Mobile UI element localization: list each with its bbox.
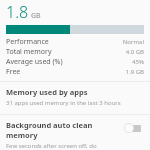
button[interactable]: Performance — [0, 37, 150, 47]
staticText: 45% — [132, 58, 144, 66]
staticText: 4.0 GB — [125, 48, 144, 56]
button[interactable]: Total memory — [0, 47, 150, 57]
button[interactable]: Free — [0, 67, 150, 77]
staticText: GB — [31, 11, 41, 21]
staticText: Background auto clean memory — [6, 120, 121, 140]
button[interactable]: Memory used by apps — [0, 82, 150, 111]
staticText: Total memory — [6, 47, 52, 57]
staticText: 1.8 — [6, 1, 29, 23]
staticText: 31 apps used memory in the last 3 hours — [6, 99, 121, 107]
button[interactable]: Background auto clean memory switch — [124, 123, 144, 133]
button[interactable]: Background auto clean memory toggle — [0, 115, 150, 150]
staticText: Few seconds after screen off, do automat… — [6, 142, 121, 150]
staticText: Normal — [122, 38, 144, 46]
staticText: Free — [6, 67, 21, 77]
staticText: Performance — [6, 37, 49, 47]
staticText: 1.9 GB — [125, 68, 144, 76]
button[interactable]: Average used (%) — [0, 57, 150, 67]
staticText: Memory used by apps — [6, 87, 88, 97]
staticText: Average used (%) — [6, 57, 63, 67]
